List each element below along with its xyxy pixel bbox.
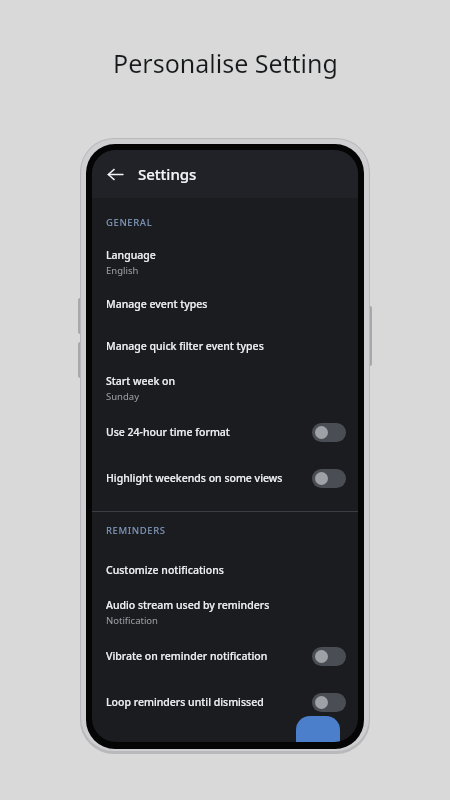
staticText: Audio stream used by reminders [106,598,270,612]
staticText: Sunday [106,390,139,403]
staticText: English [106,264,139,277]
button[interactable]: Start week on [92,367,358,409]
staticText: Personalise Setting [113,46,338,80]
staticText: Manage event types [106,297,208,311]
button[interactable]: Vibrate on reminder notification [92,633,358,679]
staticText: Use 24-hour time format [106,425,312,439]
staticText: GENERAL [106,216,153,229]
staticText: Vibrate on reminder notification [106,649,312,663]
staticText: Loop reminders until dismissed [106,695,312,709]
button[interactable]: Language [92,241,358,283]
button[interactable]: Customize notifications [92,549,358,591]
button[interactable]: Manage event types [92,283,358,325]
staticText: Manage quick filter event types [106,339,264,353]
button[interactable]: Loop reminders until dismissed [92,679,358,725]
button[interactable]: Add event [296,716,340,742]
staticText: Start week on [106,374,176,388]
staticText: Language [106,248,156,262]
staticText: Settings [138,164,197,184]
staticText: Customize notifications [106,563,224,577]
button[interactable]: Use 24-hour time format [92,409,358,455]
staticText: Highlight weekends on some views [106,471,312,485]
button[interactable]: Back [98,157,132,191]
button[interactable]: Highlight weekends on some views [92,455,358,501]
button[interactable]: Manage quick filter event types [92,325,358,367]
staticText: REMINDERS [106,524,166,537]
button[interactable]: Audio stream used by reminders [92,591,358,633]
staticText: Notification [106,614,158,627]
